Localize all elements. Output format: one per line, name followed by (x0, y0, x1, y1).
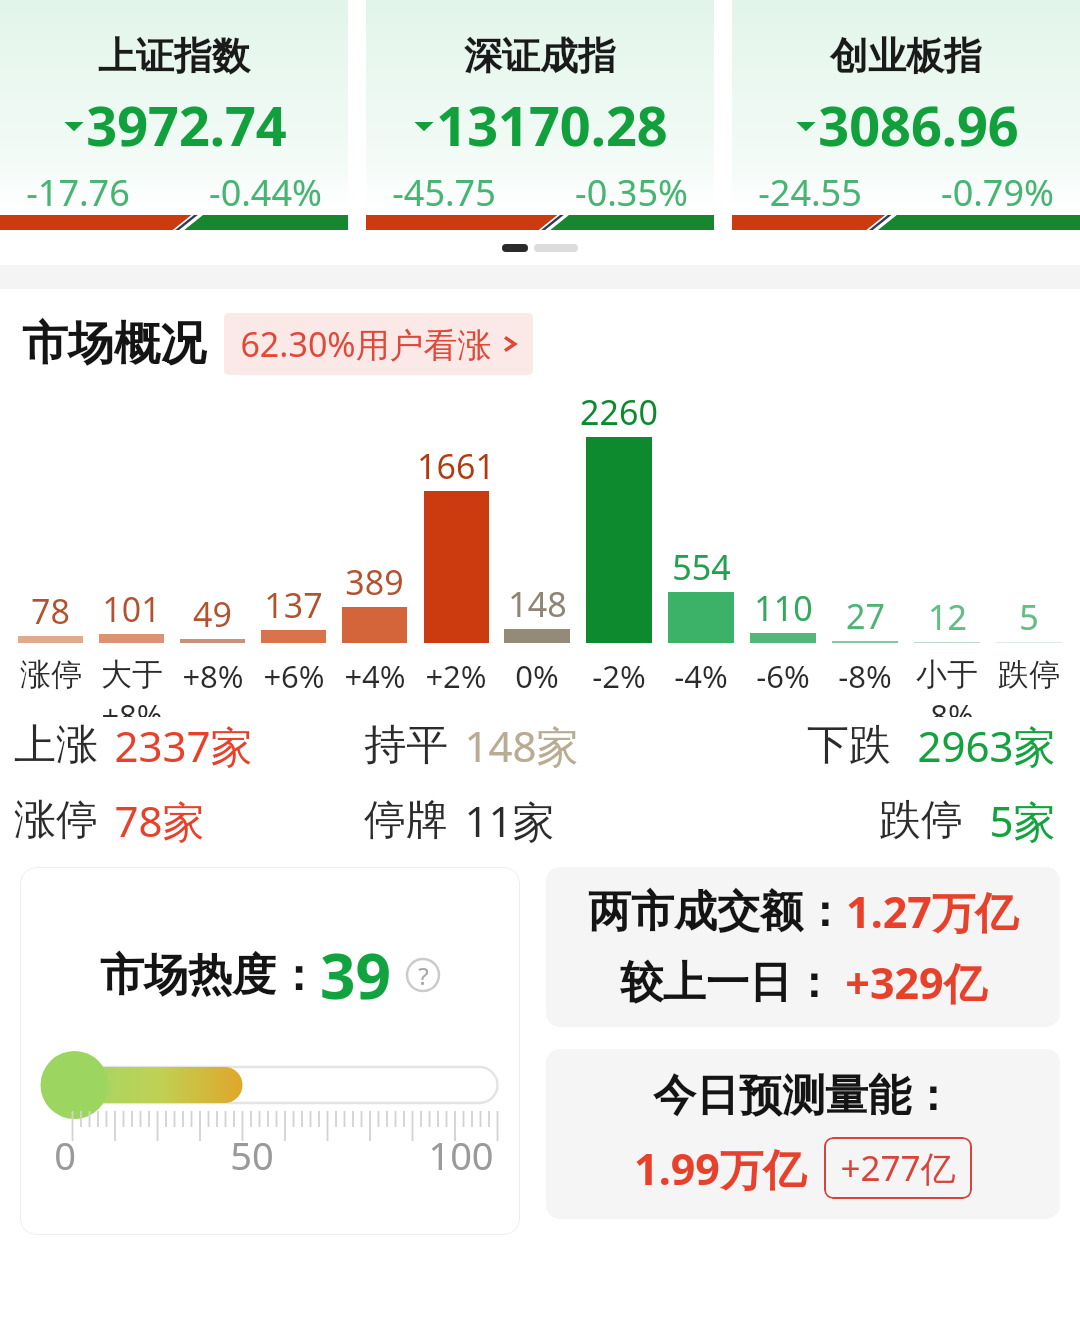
staticText: +329亿 (845, 953, 987, 1012)
staticText: 2260 (580, 389, 658, 435)
staticText: 下跌 (807, 719, 891, 772)
staticText: 涨停 (14, 794, 98, 847)
staticText: -8% (838, 655, 892, 697)
staticText: 1.99万亿 (634, 1139, 806, 1198)
staticText: 50 (230, 1129, 274, 1181)
staticText: 78家 (114, 792, 205, 849)
staticText: -0.35% (575, 168, 688, 217)
staticText: 137 (264, 582, 323, 628)
staticText: ? (418, 959, 429, 992)
staticText: 跌停 (998, 655, 1060, 694)
button[interactable]: 两市成交额： (546, 867, 1060, 1027)
staticText: 0% (515, 655, 559, 697)
staticText: -17.76 (26, 168, 130, 217)
button[interactable]: 市场热度： (20, 867, 520, 1235)
staticText: 3086.96 (818, 88, 1019, 162)
staticText: -2% (592, 655, 646, 697)
staticText: 2337家 (114, 717, 253, 774)
staticText: 110 (754, 585, 813, 631)
staticText: 较上一日： (620, 956, 835, 1010)
staticText: 554 (672, 544, 731, 590)
staticText: 今日预测量能： (653, 1069, 954, 1123)
staticText: -4% (674, 655, 728, 697)
staticText: +277亿 (840, 1144, 956, 1192)
staticText: 1.27万亿 (846, 882, 1018, 941)
staticText: +8% (182, 655, 244, 697)
staticText: 上涨 (14, 719, 98, 772)
staticText: -0.44% (209, 168, 322, 217)
staticText: 两市成交额： (588, 885, 846, 939)
staticText: 0 (54, 1129, 76, 1181)
staticText: 5家 (989, 792, 1056, 849)
staticText: 市场热度： (100, 948, 320, 1003)
staticText: 5 (1019, 594, 1039, 640)
staticText: 市场概况 (22, 315, 206, 373)
staticText: 3972.74 (86, 88, 287, 162)
button[interactable]: 62.30%用户看涨 (224, 313, 533, 375)
staticText: 100 (428, 1129, 494, 1181)
staticText: 小于 (916, 655, 978, 694)
button[interactable]: 今日预测量能： (546, 1049, 1060, 1219)
staticText: 大于 (101, 655, 163, 694)
staticText: -6% (756, 655, 810, 697)
staticText: 创业板指 (830, 32, 982, 80)
button[interactable]: 深证成指 (366, 0, 714, 231)
staticText: 78 (31, 588, 70, 634)
staticText: 12 (928, 594, 967, 640)
staticText: 389 (345, 559, 404, 605)
staticText: -0.79% (941, 168, 1054, 217)
staticText: 27 (846, 593, 885, 639)
staticText: 39 (320, 933, 391, 1017)
staticText: 101 (102, 586, 161, 632)
button[interactable]: 上证指数 (0, 0, 348, 231)
staticText: -8% (920, 694, 974, 717)
staticText: +4% (344, 655, 406, 697)
staticText: 深证成指 (464, 32, 616, 80)
staticText: +6% (263, 655, 325, 697)
staticText: 2963家 (917, 717, 1056, 774)
staticText: +8% (101, 694, 163, 717)
staticText: 上证指数 (98, 32, 250, 80)
button[interactable]: 创业板指 (732, 0, 1080, 231)
staticText: 涨停 (20, 655, 82, 694)
staticText: 62.30%用户看涨 (240, 321, 492, 367)
staticText: 11家 (464, 792, 555, 849)
staticText: +2% (425, 655, 487, 697)
staticText: -45.75 (392, 168, 496, 217)
staticText: 停牌 (364, 794, 448, 847)
staticText: 148 (508, 581, 567, 627)
staticText: 跌停 (879, 794, 963, 847)
staticText: 13170.28 (436, 88, 668, 162)
staticText: 持平 (364, 719, 448, 772)
staticText: 1661 (417, 443, 495, 489)
staticText: 49 (193, 591, 232, 637)
button[interactable]: 说明 (405, 957, 441, 993)
staticText: 148家 (464, 717, 579, 774)
staticText: -24.55 (758, 168, 862, 217)
